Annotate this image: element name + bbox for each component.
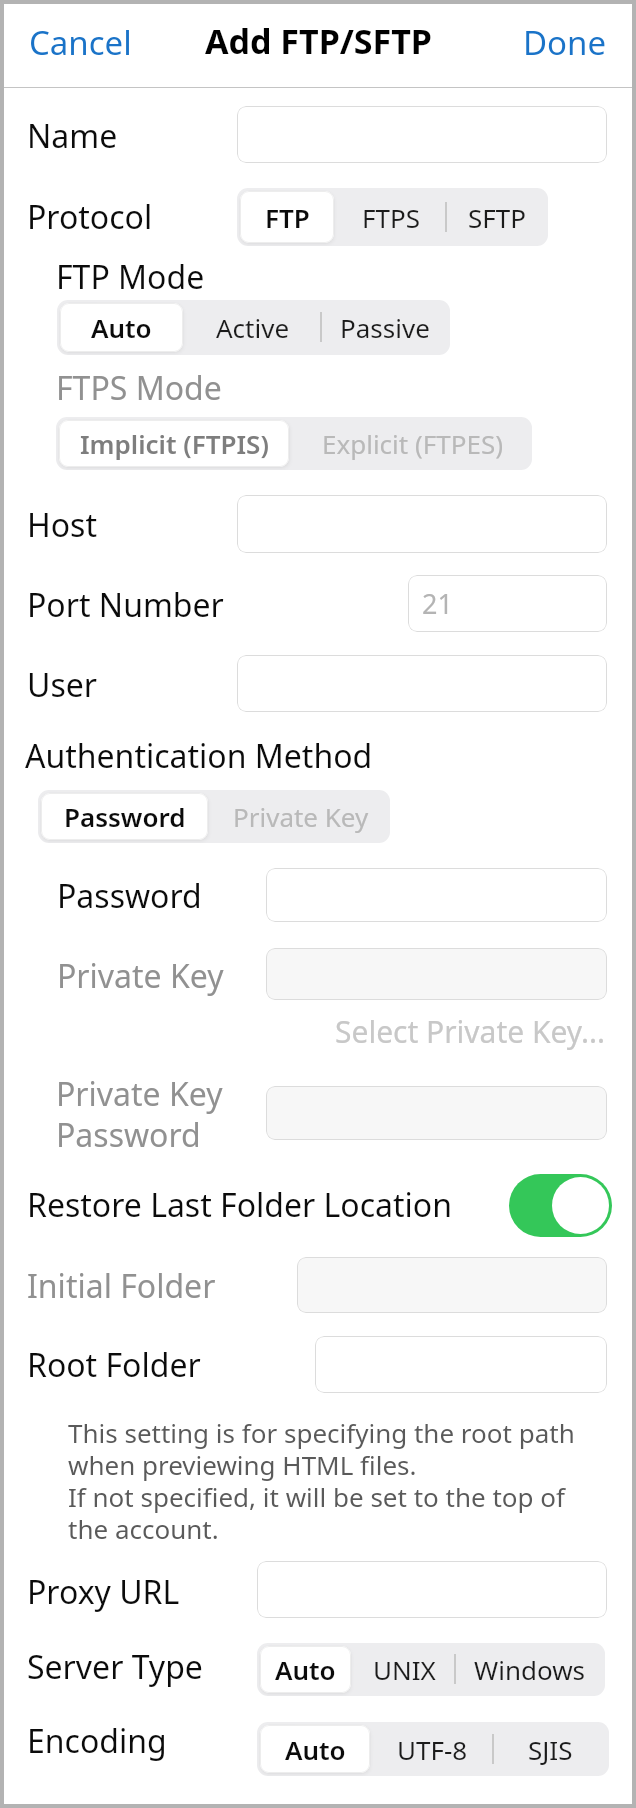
- button[interactable]: [237, 495, 607, 553]
- staticText: Private Key: [57, 954, 224, 998]
- button[interactable]: Active: [186, 300, 320, 355]
- button[interactable]: [315, 1336, 607, 1393]
- button[interactable]: UNIX: [354, 1643, 454, 1696]
- button[interactable]: Explicit (FTPES): [292, 417, 532, 470]
- staticText: This setting is for specifying the root …: [68, 1415, 575, 1450]
- staticText: Root Folder: [27, 1343, 201, 1387]
- staticText: Authentication Method: [25, 734, 373, 778]
- button[interactable]: [257, 1561, 607, 1618]
- staticText: User: [27, 663, 97, 707]
- button[interactable]: Windows: [454, 1643, 605, 1696]
- button[interactable]: UTF-8: [373, 1722, 492, 1776]
- staticText: Private Key: [233, 799, 369, 834]
- staticText: Cancel: [29, 20, 132, 65]
- staticText: the account.: [68, 1511, 219, 1546]
- button[interactable]: SJIS: [492, 1722, 609, 1776]
- button[interactable]: Select Private Key...: [335, 1011, 606, 1052]
- button[interactable]: Done: [515, 8, 615, 77]
- staticText: Implicit (FTPIS): [80, 426, 269, 461]
- staticText: Explicit (FTPES): [322, 426, 503, 461]
- staticText: FTPS Mode: [56, 366, 222, 410]
- staticText: Auto: [91, 310, 152, 345]
- staticText: Encoding: [27, 1719, 167, 1763]
- staticText: 21: [422, 585, 453, 622]
- button[interactable]: 21: [408, 575, 607, 632]
- button[interactable]: [266, 868, 607, 922]
- staticText: Proxy URL: [27, 1570, 180, 1614]
- staticText: UTF-8: [397, 1732, 468, 1767]
- staticText: Done: [523, 20, 607, 65]
- button[interactable]: Private Key: [211, 790, 390, 843]
- staticText: Auto: [285, 1732, 346, 1767]
- staticText: Private Key: [56, 1072, 223, 1116]
- staticText: Name: [27, 114, 118, 158]
- staticText: Active: [216, 310, 290, 345]
- staticText: Windows: [474, 1652, 586, 1687]
- button[interactable]: [237, 106, 607, 163]
- button[interactable]: [266, 948, 607, 1000]
- staticText: Add FTP/SFTP: [205, 18, 432, 64]
- staticText: Restore Last Folder Location: [27, 1183, 452, 1227]
- button[interactable]: Passive: [320, 300, 450, 355]
- button[interactable]: [237, 655, 607, 712]
- button[interactable]: Password: [41, 793, 208, 840]
- button[interactable]: FTPS: [337, 188, 445, 246]
- button[interactable]: Implicit (FTPIS): [59, 420, 289, 467]
- button[interactable]: Auto: [60, 303, 183, 352]
- button[interactable]: Restore last folder location: [509, 1174, 612, 1237]
- staticText: Password: [56, 1113, 201, 1157]
- staticText: Port Number: [27, 583, 224, 627]
- staticText: Password: [57, 874, 202, 918]
- button[interactable]: [297, 1257, 607, 1313]
- staticText: Initial Folder: [27, 1264, 216, 1308]
- staticText: when previewing HTML files.: [68, 1447, 417, 1482]
- button[interactable]: FTP: [240, 191, 334, 243]
- staticText: Password: [64, 799, 186, 834]
- staticText: Host: [27, 503, 97, 547]
- staticText: Select Private Key...: [335, 1011, 606, 1052]
- button[interactable]: [266, 1086, 607, 1140]
- staticText: If not specified, it will be set to the …: [68, 1479, 565, 1514]
- staticText: SJIS: [528, 1732, 573, 1767]
- button[interactable]: Auto: [260, 1725, 370, 1773]
- staticText: FTP: [265, 200, 310, 235]
- staticText: FTP Mode: [56, 255, 205, 299]
- staticText: Auto: [275, 1652, 336, 1687]
- staticText: Passive: [340, 310, 430, 345]
- button[interactable]: SFTP: [445, 188, 548, 246]
- staticText: UNIX: [373, 1652, 436, 1687]
- staticText: Protocol: [27, 195, 153, 239]
- button[interactable]: Auto: [260, 1646, 351, 1693]
- staticText: SFTP: [468, 200, 526, 235]
- staticText: Server Type: [27, 1645, 203, 1689]
- button[interactable]: Cancel: [21, 8, 140, 77]
- staticText: FTPS: [362, 200, 420, 235]
